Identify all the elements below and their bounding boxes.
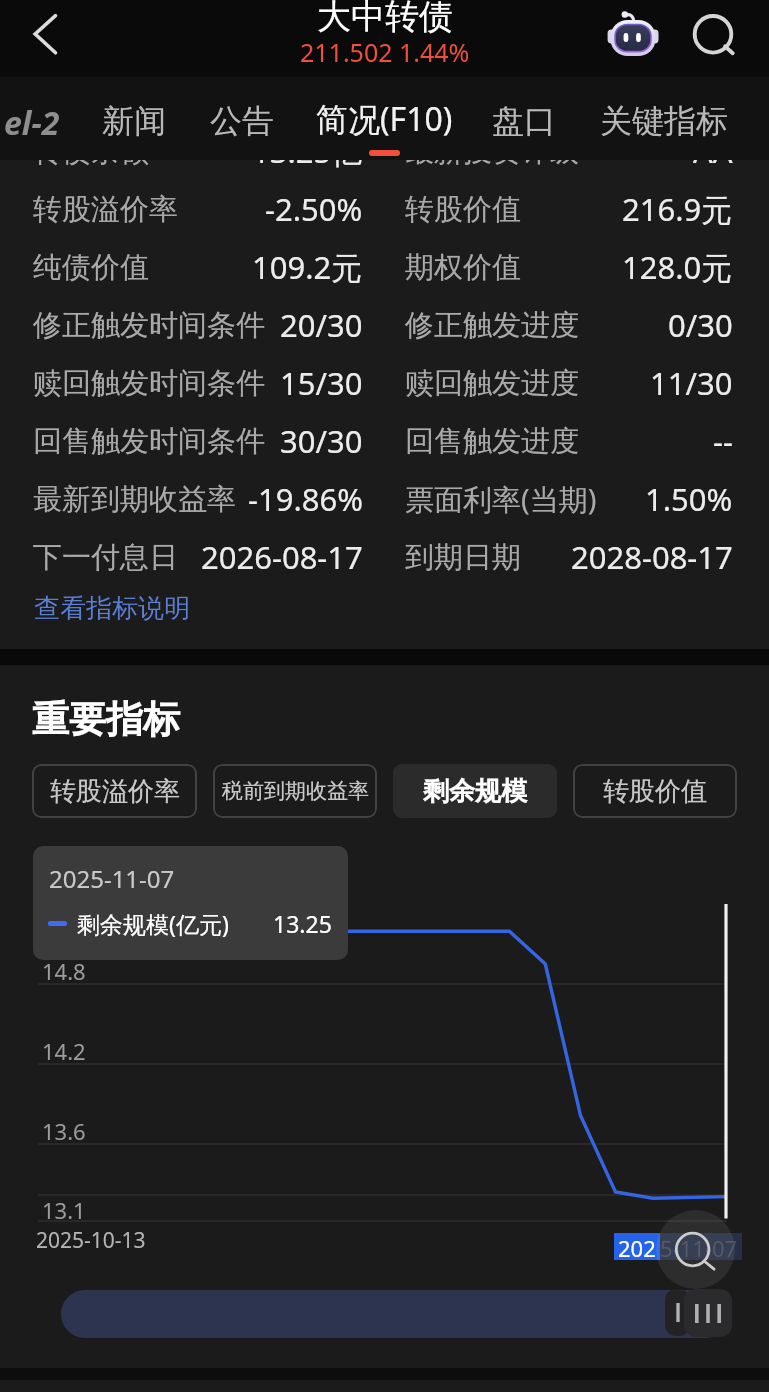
staticText: 0/30 — [668, 304, 733, 346]
staticText: 14.2 — [42, 1036, 86, 1066]
staticText: 5-11-07 — [660, 1233, 738, 1260]
button[interactable]: Back — [10, 6, 76, 72]
staticText: el-2 — [4, 101, 60, 145]
staticText: 税前到期收益率 — [222, 778, 369, 804]
staticText: 重要指标 — [32, 696, 180, 743]
button[interactable]: 转股价值 — [573, 764, 737, 818]
staticText: 简况(F10) — [316, 97, 453, 141]
staticText: 211.502 1.44% — [300, 35, 470, 69]
button[interactable]: 转股溢价率 — [32, 764, 197, 818]
staticText: 盘口 — [492, 101, 556, 141]
staticText: 最新投资评级 — [405, 133, 579, 170]
staticText: 最新到期收益率 — [33, 481, 236, 518]
button[interactable]: 新闻 — [87, 77, 181, 160]
staticText: 30/30 — [280, 420, 363, 462]
staticText: 大中转债 — [317, 0, 453, 38]
staticText: 回售触发进度 — [405, 423, 579, 460]
staticText: 公告 — [210, 101, 274, 141]
button[interactable]: 简况(F10) — [301, 77, 467, 160]
staticText: 14.8 — [42, 956, 86, 986]
staticText: 216.9元 — [622, 188, 733, 230]
button[interactable]: 公告 — [195, 77, 289, 160]
staticText: 到期日期 — [405, 539, 521, 576]
staticText: 转债余额 — [33, 133, 149, 170]
staticText: 赎回触发时间条件 — [33, 365, 265, 402]
staticText: 11/30 — [650, 362, 733, 404]
staticText: 修正触发时间条件 — [33, 307, 265, 344]
staticText: 15/30 — [280, 362, 363, 404]
button[interactable]: Multi line chart — [684, 1289, 732, 1337]
staticText: 109.2元 — [252, 246, 363, 288]
staticText: 2025-11-07 — [49, 862, 175, 895]
staticText: 回售触发时间条件 — [33, 423, 265, 460]
button[interactable]: Search — [678, 3, 748, 73]
staticText: 转股溢价率 — [33, 191, 178, 228]
button[interactable]: Single line chart — [665, 1289, 690, 1336]
staticText: 转股价值 — [603, 775, 707, 808]
button[interactable]: 查看指标说明 — [34, 586, 769, 630]
button[interactable]: 税前到期收益率 — [213, 764, 377, 818]
staticText: 20/30 — [280, 304, 363, 346]
staticText: 2025-10-13 — [36, 1226, 146, 1255]
staticText: 票面利率(当期) — [405, 479, 597, 519]
staticText: 13.6 — [42, 1116, 86, 1146]
staticText: 转股溢价率 — [50, 775, 180, 808]
staticText: 2026-08-17 — [201, 536, 363, 578]
staticText: 新闻 — [102, 101, 166, 141]
staticText: 2028-08-17 — [571, 536, 733, 578]
staticText: 赎回触发进度 — [405, 365, 579, 402]
button[interactable]: AI Assistant — [598, 3, 668, 73]
staticText: AA — [693, 130, 733, 172]
staticText: 查看指标说明 — [34, 592, 190, 625]
staticText: 下一付息日 — [33, 539, 178, 576]
staticText: 关键指标 — [600, 101, 728, 141]
button[interactable]: 剩余规模 — [393, 764, 557, 818]
staticText: 1.50% — [645, 478, 733, 520]
staticText: 转股价值 — [405, 191, 521, 228]
button[interactable] — [61, 1290, 730, 1338]
staticText: 202 — [618, 1233, 656, 1260]
staticText: -19.86% — [248, 478, 363, 520]
staticText: 期权价值 — [405, 249, 521, 286]
staticText: 剩余规模 — [423, 775, 527, 808]
staticText: 13.1 — [42, 1195, 86, 1225]
button[interactable]: Level-2 — [4, 77, 66, 160]
button[interactable]: 关键指标 — [586, 77, 742, 160]
staticText: 128.0元 — [622, 246, 733, 288]
staticText: 13.25 — [273, 908, 332, 939]
staticText: 13.25亿 — [252, 130, 363, 172]
staticText: 纯债价值 — [33, 249, 149, 286]
staticText: -2.50% — [265, 188, 363, 230]
staticText: -- — [713, 420, 733, 462]
staticText: 修正触发进度 — [405, 307, 579, 344]
button[interactable]: 盘口 — [477, 77, 571, 160]
staticText: 剩余规模(亿元) — [77, 908, 229, 939]
